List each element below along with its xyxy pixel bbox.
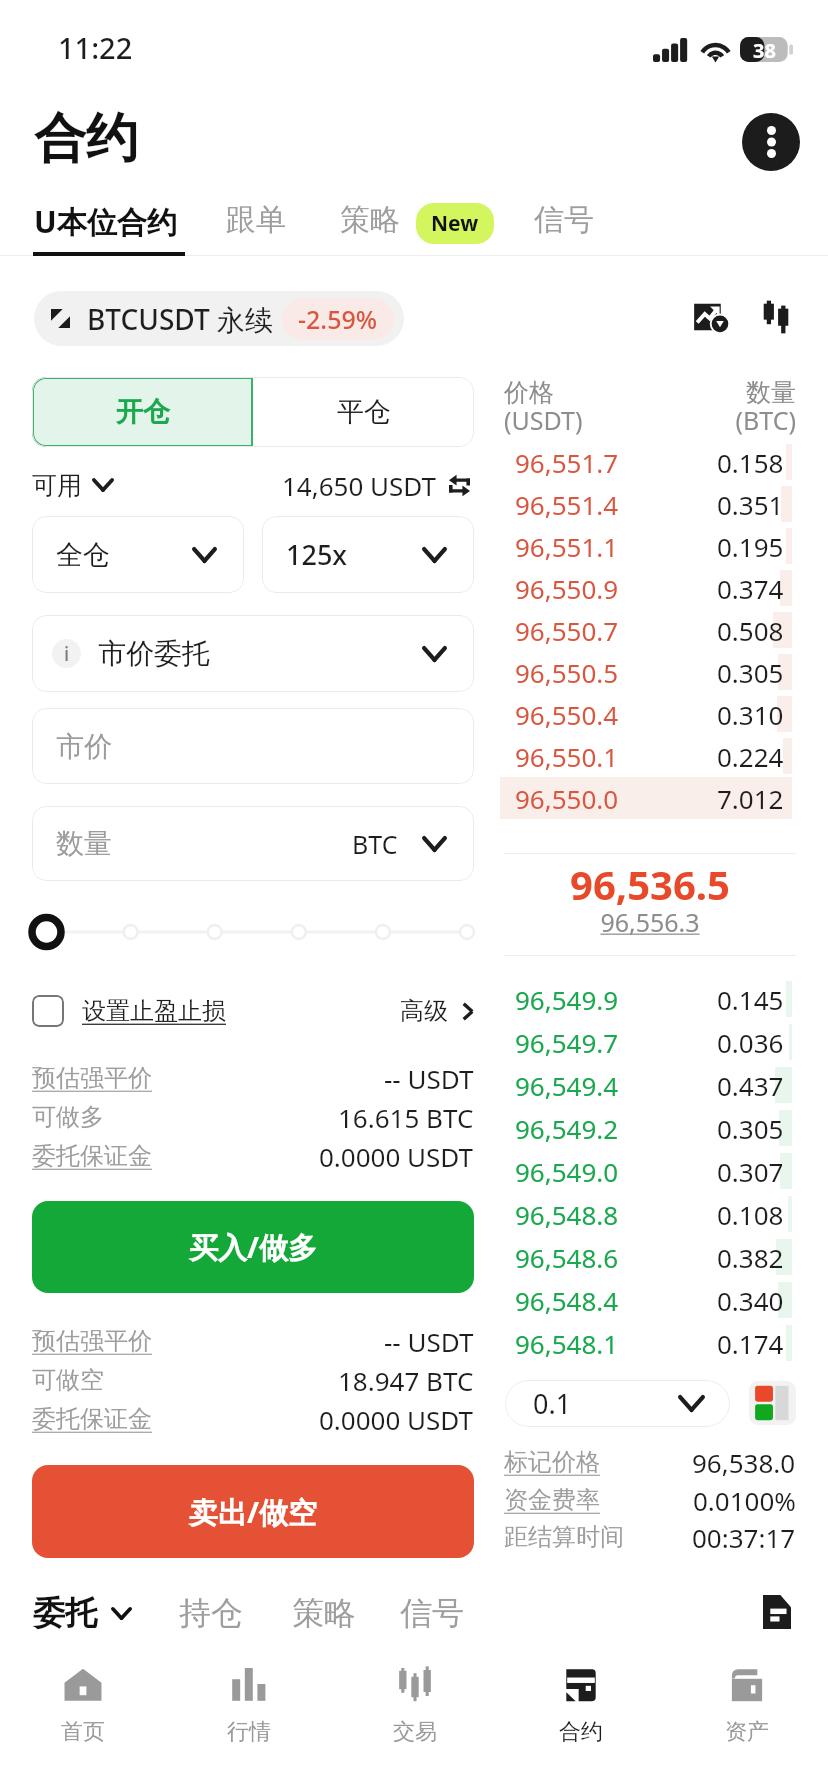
staticText: 0.340 xyxy=(717,1283,784,1318)
staticText: 96,550.4 xyxy=(515,697,619,732)
button[interactable]: 合约 xyxy=(498,1648,664,1764)
staticText: 策略 xyxy=(340,201,400,239)
staticText: 市价 xyxy=(56,729,112,764)
staticText: 数量 xyxy=(56,826,112,861)
button[interactable]: 0.1 xyxy=(505,1380,730,1427)
staticText: 0.0000 USDT xyxy=(319,1139,474,1174)
staticText: 96,549.4 xyxy=(515,1068,619,1103)
staticText: 7.012 xyxy=(717,781,784,816)
button[interactable]: 96,550.9 xyxy=(504,567,796,609)
button[interactable]: 高级 xyxy=(400,996,474,1026)
button[interactable]: 持仓 xyxy=(179,1589,243,1637)
staticText: U本位合约 xyxy=(34,201,177,242)
staticText: 0.382 xyxy=(717,1240,784,1275)
button[interactable]: BTCUSDT 永续 xyxy=(34,291,404,346)
staticText: 96,551.4 xyxy=(515,487,619,522)
button[interactable]: 可用 xyxy=(32,464,470,506)
button[interactable]: U本位合约 xyxy=(34,195,177,248)
button[interactable]: 96,549.0 xyxy=(504,1150,796,1192)
button[interactable]: 信号 xyxy=(400,1589,464,1637)
button[interactable]: 96,548.1 xyxy=(504,1322,796,1364)
staticText: 96,538.0 xyxy=(692,1445,796,1480)
button[interactable]: 策略 xyxy=(292,1589,356,1637)
button[interactable]: 数量 xyxy=(32,806,474,881)
staticText: 0.195 xyxy=(717,529,784,564)
button[interactable]: 交易 xyxy=(332,1648,498,1764)
staticText: -2.59% xyxy=(298,302,378,336)
button[interactable]: 96,548.6 xyxy=(504,1236,796,1278)
button[interactable]: 开仓 xyxy=(32,377,253,447)
staticText: 信号 xyxy=(534,201,594,239)
staticText: 96,550.9 xyxy=(515,571,619,606)
button[interactable]: Depth view xyxy=(761,298,791,336)
button[interactable]: 设置止盈止损 xyxy=(32,995,226,1027)
staticText: 0.145 xyxy=(717,982,784,1017)
button[interactable]: Order book layout xyxy=(749,1381,796,1425)
button[interactable]: 96,548.4 xyxy=(504,1279,796,1321)
staticText: 96,548.6 xyxy=(515,1240,619,1275)
staticText: 买入/做多 xyxy=(189,1227,318,1267)
staticText: 96,536.5 xyxy=(504,857,796,911)
staticText: 交易 xyxy=(393,1718,437,1746)
staticText: 0.305 xyxy=(717,1111,784,1146)
staticText: 0.351 xyxy=(717,487,784,522)
staticText: 市价委托 xyxy=(98,636,210,671)
staticText: 96,550.1 xyxy=(515,739,619,774)
staticText: 可做多 xyxy=(32,1102,104,1132)
button[interactable]: 首页 xyxy=(0,1648,166,1764)
button[interactable]: 96,551.7 xyxy=(504,441,796,483)
button[interactable]: 96,549.9 xyxy=(504,978,796,1020)
button[interactable]: 96,550.1 xyxy=(504,735,796,777)
button[interactable]: 卖出/做空 xyxy=(32,1465,474,1558)
button[interactable]: 行情 xyxy=(166,1648,332,1764)
staticText: 预估强平价 xyxy=(32,1063,152,1093)
button[interactable]: 96,550.7 xyxy=(504,609,796,651)
staticText: 96,549.0 xyxy=(515,1154,619,1189)
staticText: 委托保证金 xyxy=(32,1141,152,1171)
button[interactable]: 委托 xyxy=(33,1589,132,1637)
button[interactable]: 96,549.7 xyxy=(504,1021,796,1063)
button[interactable]: 96,550.0 xyxy=(504,777,796,819)
button[interactable]: 96,551.4 xyxy=(504,483,796,525)
staticText: 委托 xyxy=(33,1593,97,1633)
staticText: 96,550.0 xyxy=(515,781,619,816)
button[interactable]: 跟单 xyxy=(226,195,286,245)
button[interactable]: 96,548.8 xyxy=(504,1193,796,1235)
staticText: 0.0000 USDT xyxy=(319,1402,474,1437)
button[interactable]: 信号 xyxy=(534,195,594,245)
button[interactable]: 96,549.2 xyxy=(504,1107,796,1149)
button[interactable]: 策略 xyxy=(340,195,400,245)
button[interactable]: 买入/做多 xyxy=(32,1201,474,1293)
button[interactable]: New xyxy=(416,203,494,244)
button[interactable]: Chart xyxy=(693,300,731,334)
staticText: 16.615 BTC xyxy=(338,1100,474,1135)
button[interactable]: 96,550.4 xyxy=(504,693,796,735)
button[interactable]: 市价 xyxy=(32,708,474,784)
staticText: 委托保证金 xyxy=(32,1404,152,1434)
button[interactable]: 资产 xyxy=(664,1648,828,1764)
button[interactable]: 96,550.5 xyxy=(504,651,796,693)
button[interactable]: Order records xyxy=(763,1595,791,1629)
button[interactable]: i xyxy=(32,615,474,692)
button[interactable]: 全仓 xyxy=(32,516,244,593)
button[interactable]: 96,551.1 xyxy=(504,525,796,567)
staticText: 96,548.4 xyxy=(515,1283,619,1318)
button[interactable]: 96,549.4 xyxy=(504,1064,796,1106)
staticText: 距结算时间 xyxy=(504,1522,624,1552)
button[interactable]: 125x xyxy=(262,516,474,593)
staticText: BTC xyxy=(352,827,398,861)
button[interactable]: More options xyxy=(742,113,800,171)
staticText: 0.108 xyxy=(717,1197,784,1232)
staticText: 0.508 xyxy=(717,613,784,648)
staticText: 合约 xyxy=(559,1718,603,1746)
button[interactable]: Amount slider xyxy=(32,908,474,956)
staticText: 96,551.7 xyxy=(515,445,619,480)
staticText: 18.947 BTC xyxy=(338,1363,474,1398)
button[interactable]: 平仓 xyxy=(253,377,474,447)
staticText: 0.0100% xyxy=(693,1483,796,1518)
staticText: 全仓 xyxy=(56,538,110,572)
staticText: 0.036 xyxy=(717,1025,784,1060)
staticText: 96,551.1 xyxy=(515,529,619,564)
staticText: 0.374 xyxy=(717,571,784,606)
staticText: 0.158 xyxy=(717,445,784,480)
